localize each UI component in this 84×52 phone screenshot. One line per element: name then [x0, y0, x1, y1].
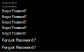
staticText: Forgot Password?	[2, 21, 26, 24]
staticText: Forgot Password?	[2, 45, 36, 50]
staticText: Forgot Password?	[2, 37, 36, 43]
staticText: Forgot Password?	[2, 6, 17, 8]
staticText: Forgot Password?	[2, 15, 26, 19]
staticText: Forgot Password?	[2, 9, 26, 13]
staticText: Forgot Password?	[2, 32, 26, 35]
staticText: Forgot Password?	[2, 2, 17, 4]
staticText: Forgot Password?	[2, 26, 26, 30]
